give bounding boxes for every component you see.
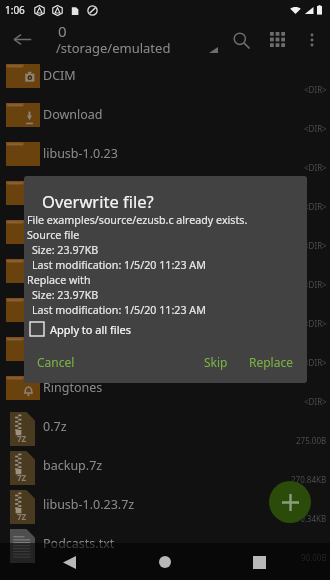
staticText: 7Z <box>17 511 27 522</box>
button[interactable]: libusb-1.0.23 <box>0 136 330 175</box>
button[interactable]: 7Z <box>0 487 330 526</box>
staticText: Movies <box>43 184 85 201</box>
button[interactable]: Home <box>147 544 183 580</box>
staticText: 0 <box>58 21 67 41</box>
staticText: 7Z <box>17 433 27 444</box>
staticText: <DIR> <box>304 201 327 212</box>
staticText: <DIR> <box>304 123 327 134</box>
staticText: Replace with <box>27 273 91 288</box>
staticText: <DIR> <box>304 318 327 329</box>
button[interactable]: Change view <box>259 21 296 58</box>
button[interactable]: Replace <box>249 354 293 370</box>
button[interactable]: Pictures <box>0 292 330 331</box>
button[interactable]: 7Z <box>0 448 330 487</box>
staticText: backup.7z <box>43 457 103 474</box>
staticText: 0.7z <box>43 418 67 435</box>
staticText: Music <box>43 223 78 240</box>
button[interactable]: Ringtones <box>0 370 330 409</box>
button[interactable]: 7Z <box>0 409 330 448</box>
staticText: libusb-1.0.23.7z <box>43 496 135 513</box>
staticText: Ringtones <box>43 379 103 396</box>
staticText: Apply to all files <box>50 322 131 337</box>
staticText: 270.34KB <box>291 513 327 524</box>
button[interactable]: Skip <box>204 354 228 370</box>
staticText: <DIR> <box>304 279 327 290</box>
staticText: <DIR> <box>304 84 327 95</box>
button[interactable]: Recents <box>241 544 277 580</box>
button[interactable]: Podcasts.txt <box>0 526 330 565</box>
staticText: 275.00B <box>296 435 327 446</box>
button[interactable]: Search <box>223 22 259 58</box>
staticText: <DIR> <box>304 396 327 407</box>
staticText: <DIR> <box>304 162 327 173</box>
staticText: Cancel <box>37 354 75 370</box>
button[interactable]: Add <box>269 481 311 523</box>
button[interactable]: Back <box>51 544 87 580</box>
staticText: 90.00B <box>301 552 327 563</box>
staticText: 270.84KB <box>291 474 327 485</box>
button[interactable]: Back <box>4 21 40 57</box>
staticText: DCIM <box>43 67 76 84</box>
button[interactable]: Notifications <box>0 253 330 292</box>
staticText: Source file <box>27 228 80 243</box>
button[interactable]: Apply to all files <box>30 317 131 341</box>
button[interactable]: Podcasts <box>0 331 330 370</box>
staticText: Download <box>43 106 103 123</box>
staticText: <DIR> <box>304 357 327 368</box>
staticText: Size: 23.97KB <box>32 288 99 303</box>
staticText: Replace <box>249 354 293 370</box>
staticText: Last modification: 1/5/20 11:23 AM <box>32 303 206 318</box>
staticText: Skip <box>204 354 228 370</box>
staticText: Podcasts.txt <box>43 535 115 552</box>
button[interactable]: Music <box>0 214 330 253</box>
staticText: libusb-1.0.23 <box>43 145 118 162</box>
button[interactable]: Movies <box>0 175 330 214</box>
staticText: Notifications <box>43 262 118 279</box>
staticText: <DIR> <box>304 240 327 251</box>
staticText: Size: 23.97KB <box>32 243 99 258</box>
staticText: File examples/source/ezusb.c already exi… <box>27 213 248 228</box>
staticText: 1:06 <box>5 3 25 17</box>
staticText: 7Z <box>17 472 27 483</box>
staticText: /storage/emulated <box>56 39 171 57</box>
button[interactable]: Cancel <box>37 354 75 370</box>
staticText: Pictures <box>43 301 90 318</box>
staticText: Overwrite file? <box>42 190 154 212</box>
button[interactable]: More options <box>296 24 328 56</box>
staticText: Last modification: 1/5/20 11:23 AM <box>32 258 206 273</box>
button[interactable]: Download <box>0 97 330 136</box>
button[interactable]: DCIM <box>0 58 330 97</box>
